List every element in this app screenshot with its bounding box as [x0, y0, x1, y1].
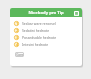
button[interactable]: 1: [14, 20, 78, 27]
staticText: 1: [16, 22, 18, 26]
button[interactable]: 4: [14, 41, 78, 48]
button[interactable]: Gone: [15, 52, 24, 57]
staticText: Intesini hednote: [22, 42, 49, 47]
staticText: Gone: [16, 53, 24, 57]
staticText: 3: [16, 36, 18, 40]
button[interactable]: Menu: [73, 10, 79, 16]
staticText: Nicebody pro Tip: [28, 10, 64, 16]
staticText: 2: [16, 29, 18, 33]
button[interactable]: 3: [14, 34, 78, 41]
staticText: Possedsoble hednote: [22, 35, 57, 40]
staticText: Sedatini hednote: [22, 28, 50, 33]
staticText: Sesbez ware renorsel: [22, 21, 56, 26]
button[interactable]: 2: [14, 27, 78, 34]
staticText: 4: [16, 43, 18, 47]
